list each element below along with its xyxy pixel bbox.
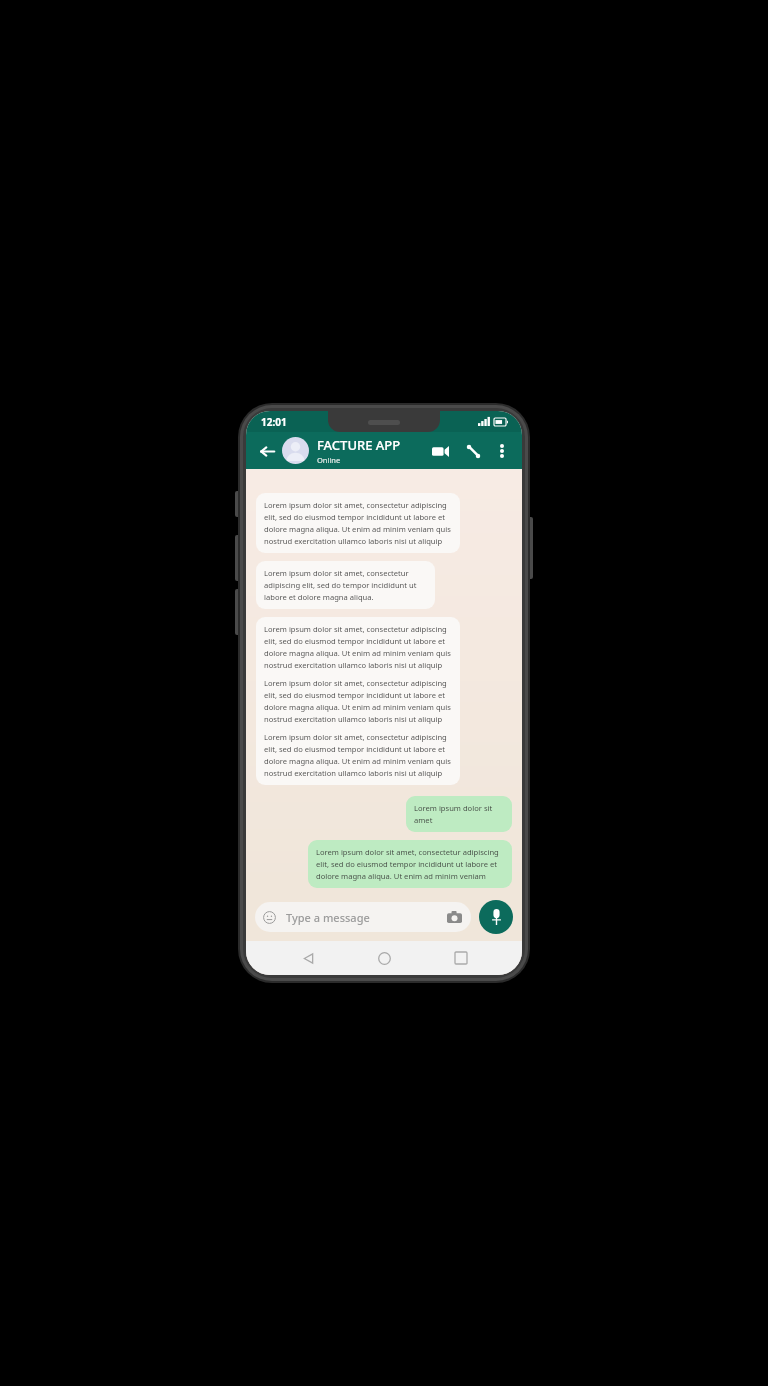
staticText: Type a message: [286, 910, 445, 925]
staticText: 12:01: [261, 415, 287, 429]
button[interactable]: Recent apps: [446, 943, 476, 973]
staticText: Lorem ipsum dolor sit amet, consectetur …: [264, 732, 452, 778]
staticText: Lorem ipsum dolor sit amet, consectetur …: [264, 678, 452, 724]
button[interactable]: Lorem ipsum dolor sit amet, consectetur …: [256, 617, 460, 785]
staticText: Lorem ipsum dolor sit amet, consectetur …: [264, 568, 427, 602]
button[interactable]: Lorem ipsum dolor sit amet, consectetur …: [256, 493, 460, 553]
button[interactable]: Back: [293, 943, 323, 973]
staticText: Online: [317, 455, 341, 465]
button[interactable]: Record voice message: [479, 900, 513, 934]
button[interactable]: Lorem ipsum dolor sit amet, consectetur …: [308, 840, 512, 888]
button[interactable]: Home: [369, 943, 399, 973]
button[interactable]: Voice call: [461, 439, 485, 463]
button[interactable]: Back: [256, 440, 278, 462]
button[interactable]: Profile photo: [282, 437, 309, 464]
button[interactable]: Lorem ipsum dolor sit amet, consectetur …: [256, 561, 435, 609]
staticText: Lorem ipsum dolor sit amet, consectetur …: [264, 624, 452, 670]
button[interactable]: FACTURE APP: [317, 436, 428, 465]
button[interactable]: More options: [492, 441, 512, 461]
button[interactable]: Type a message: [255, 902, 471, 932]
button[interactable]: Lorem ipsum dolor sit amet: [406, 796, 512, 832]
button[interactable]: Video call: [428, 439, 452, 463]
staticText: Lorem ipsum dolor sit amet, consectetur …: [264, 500, 452, 546]
button[interactable]: Camera: [445, 908, 463, 926]
staticText: Lorem ipsum dolor sit amet, consectetur …: [316, 847, 504, 881]
staticText: FACTURE APP: [317, 436, 401, 454]
staticText: Lorem ipsum dolor sit amet: [414, 803, 504, 825]
